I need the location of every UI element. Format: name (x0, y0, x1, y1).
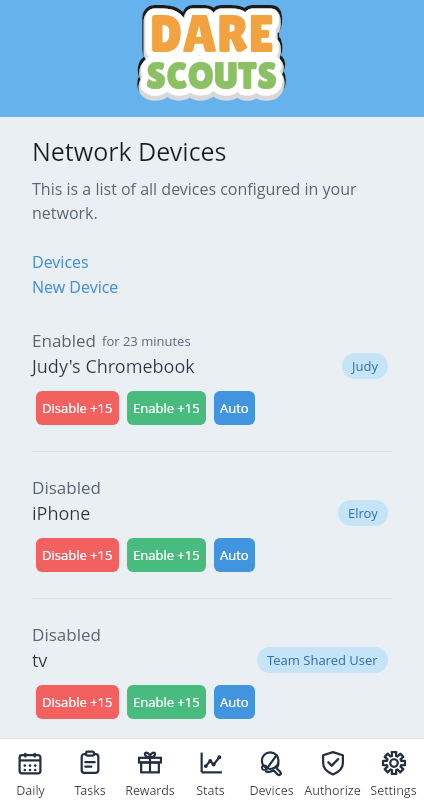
staticText: Auto (220, 693, 249, 711)
button[interactable]: Stats (180, 739, 241, 804)
staticText: Settings (370, 782, 417, 799)
staticText: iPhone (32, 501, 91, 526)
staticText: Enable +15 (133, 399, 200, 417)
staticText: Disable +15 (42, 546, 113, 564)
button[interactable]: Devices (241, 739, 302, 804)
button[interactable]: Disable +15 (36, 685, 119, 719)
staticText: Enabled (32, 329, 97, 352)
staticText: Auto (220, 399, 249, 417)
staticText: tv (32, 648, 48, 673)
button[interactable]: Enable +15 (127, 685, 206, 719)
staticText: for 23 minutes (102, 332, 191, 350)
staticText: This is a list of all devices configured… (32, 178, 384, 224)
button[interactable]: Devices (0, 251, 89, 273)
button[interactable]: Team Shared User (257, 647, 388, 673)
staticText: Daily (16, 782, 45, 799)
staticText: Devices (249, 782, 294, 799)
button[interactable]: Rewards (120, 739, 180, 804)
staticText: Authorize (304, 782, 361, 799)
button[interactable]: Settings (363, 739, 424, 804)
button[interactable]: Auto (214, 685, 255, 719)
staticText: Judy (352, 357, 378, 375)
button[interactable]: Disable +15 (36, 538, 119, 572)
staticText: Enable +15 (133, 546, 200, 564)
staticText: Disable +15 (42, 399, 113, 417)
staticText: Elroy (348, 504, 378, 522)
button[interactable]: Daily (0, 739, 60, 804)
staticText: Auto (220, 546, 249, 564)
staticText: Rewards (125, 782, 175, 799)
staticText: Enable +15 (133, 693, 200, 711)
button[interactable]: Authorize (302, 739, 363, 804)
staticText: Disabled (32, 623, 101, 646)
button[interactable]: New Device (0, 276, 119, 298)
button[interactable]: Auto (214, 391, 255, 425)
button[interactable]: Tasks (60, 739, 120, 804)
button[interactable]: Enable +15 (127, 391, 206, 425)
button[interactable]: Elroy (338, 500, 388, 526)
button[interactable]: Judy (342, 353, 388, 379)
staticText: Judy's Chromebook (32, 354, 195, 379)
staticText: Team Shared User (267, 651, 378, 669)
staticText: Stats (196, 782, 225, 799)
staticText: Tasks (74, 782, 106, 799)
staticText: Disabled (32, 476, 101, 499)
button[interactable]: Auto (214, 538, 255, 572)
button[interactable]: Disable +15 (36, 391, 119, 425)
staticText: Network Devices (32, 134, 227, 168)
staticText: Disable +15 (42, 693, 113, 711)
button[interactable]: Enable +15 (127, 538, 206, 572)
